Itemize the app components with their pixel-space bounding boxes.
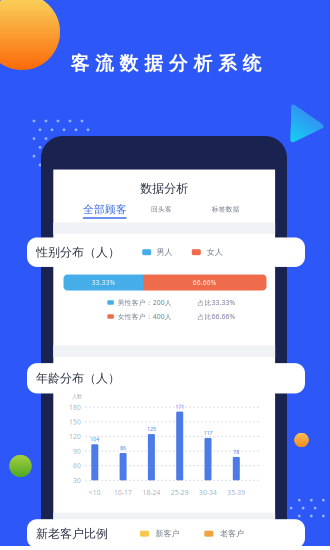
staticText: 人数 <box>72 393 82 400</box>
staticText: 30 <box>73 476 81 485</box>
staticText: 86 <box>120 444 126 452</box>
staticText: 女性客户：400人 <box>118 312 172 321</box>
staticText: 客流数据分析系统 <box>70 52 262 75</box>
staticText: 60 <box>73 461 81 470</box>
staticText: 老客户 <box>220 529 244 539</box>
staticText: 150 <box>69 417 81 426</box>
staticText: 180 <box>69 403 81 412</box>
staticText: 女人 <box>207 247 223 257</box>
staticText: 30-34 <box>199 488 217 497</box>
staticText: 新客户 <box>155 529 179 539</box>
staticText: 回头客 <box>151 205 172 213</box>
staticText: 90 <box>73 447 81 455</box>
staticText: 66.66% <box>193 278 217 287</box>
staticText: 104 <box>90 436 99 443</box>
staticText: 男人 <box>156 247 172 257</box>
staticText: 年龄分布（人） <box>36 371 120 386</box>
staticText: 10-17 <box>114 488 132 497</box>
staticText: 男性客户：200人 <box>118 298 172 307</box>
staticText: <10 <box>89 488 101 497</box>
staticText: 25-29 <box>171 488 189 497</box>
staticText: 120 <box>69 432 81 441</box>
staticText: 新老客户比例 <box>36 526 108 541</box>
staticText: 占比33.33% <box>197 298 235 307</box>
staticText: 性别分布（人） <box>36 245 120 259</box>
staticText: 33.33% <box>91 278 115 287</box>
staticText: 标签数据 <box>212 205 240 213</box>
staticText: 117 <box>203 429 212 436</box>
staticText: 78 <box>233 448 239 455</box>
staticText: 171 <box>175 403 184 410</box>
staticText: 占比66.66% <box>197 312 235 321</box>
staticText: 125 <box>147 425 156 433</box>
staticText: 数据分析 <box>140 181 188 196</box>
staticText: 全部顾客 <box>83 203 127 216</box>
staticText: 18-24 <box>142 488 160 497</box>
staticText: 35-39 <box>227 488 245 497</box>
